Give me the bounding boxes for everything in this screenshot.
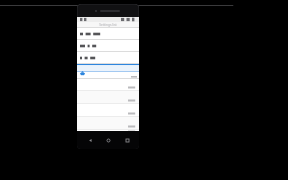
- button[interactable]: [77, 91, 139, 103]
- button[interactable]: [77, 79, 139, 90]
- button[interactable]: [77, 52, 139, 63]
- button[interactable]: Home: [102, 134, 114, 146]
- button[interactable]: [77, 130, 139, 131]
- other: Plugin: [80, 71, 85, 76]
- button[interactable]: [77, 104, 139, 116]
- button[interactable]: [77, 40, 139, 51]
- button[interactable]: Plugin: [77, 64, 139, 79]
- button[interactable]: Back: [84, 134, 96, 146]
- button[interactable]: [77, 28, 139, 39]
- button[interactable]: Recent apps: [121, 134, 133, 146]
- button[interactable]: [77, 117, 139, 129]
- staticText: Settings list: [99, 23, 117, 27]
